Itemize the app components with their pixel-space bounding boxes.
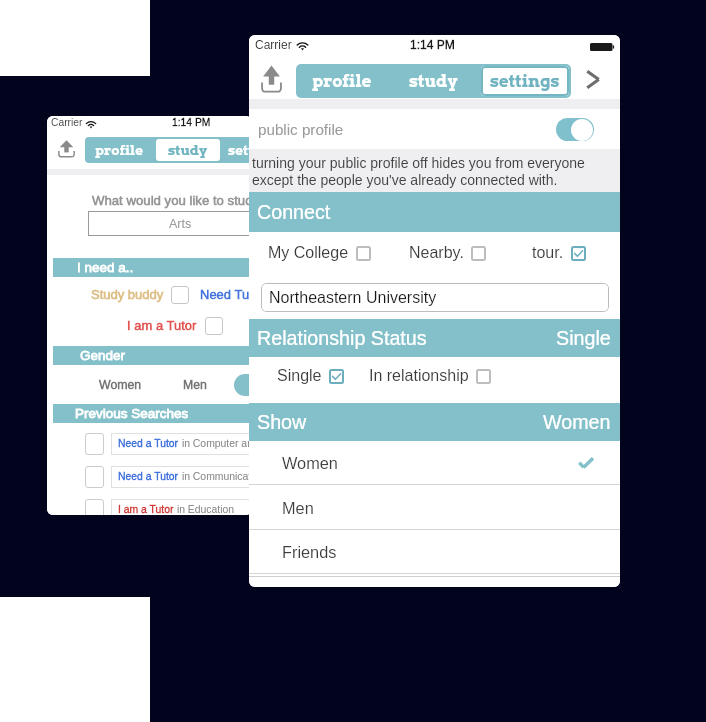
button[interactable]: tour. (532, 241, 586, 265)
button[interactable]: profile (298, 66, 385, 96)
staticText: Carrier (51, 117, 83, 129)
staticText: Study buddy (91, 287, 164, 302)
button[interactable]: My College (268, 241, 371, 265)
button[interactable]: public profile (249, 109, 620, 149)
button[interactable] (234, 374, 252, 396)
staticText: study (409, 71, 458, 91)
button[interactable]: Northeastern University (261, 283, 609, 312)
staticText: What would you like to study? (92, 193, 252, 208)
staticText: Men (183, 378, 207, 392)
button[interactable]: In relationship (369, 364, 491, 388)
staticText: 1:14 PM (410, 38, 455, 51)
staticText: In relationship (369, 367, 469, 385)
staticText: settings (490, 71, 560, 91)
button[interactable]: study (389, 66, 477, 96)
staticText: public profile (258, 121, 344, 138)
staticText: Women (543, 411, 611, 433)
button[interactable] (85, 499, 104, 515)
staticText: 1:14 PM (172, 117, 211, 129)
staticText: turning your public profile off hides yo… (252, 155, 612, 188)
button[interactable] (85, 466, 104, 488)
staticText: I need a.. (77, 260, 134, 275)
staticText: Single (556, 327, 611, 349)
button[interactable] (171, 286, 189, 304)
staticText: Previous Searches (75, 406, 189, 421)
staticText: Women (282, 454, 338, 472)
staticText: profile (312, 71, 372, 91)
button[interactable]: Need a Tutor (111, 466, 252, 488)
staticText: Arts (169, 217, 192, 231)
staticText: I am a Tutor (127, 318, 197, 333)
staticText: Northeastern University (269, 289, 437, 307)
staticText: Nearby. (409, 244, 464, 262)
staticText: Show (257, 411, 307, 433)
staticText: Connect (257, 201, 331, 223)
staticText: Need a Tutor (118, 438, 179, 450)
button[interactable]: Men (249, 485, 620, 530)
button[interactable]: settings (224, 139, 252, 161)
staticText: in Communication (179, 471, 252, 483)
staticText: Friends (282, 543, 337, 561)
button[interactable]: profile (87, 139, 152, 161)
staticText: Women (99, 378, 142, 392)
staticText: in Computer and... (179, 438, 252, 450)
staticText: Men (282, 499, 314, 517)
staticText: Need a Tutor (118, 471, 179, 483)
button[interactable]: Friends (249, 530, 620, 574)
staticText: tour. (532, 244, 564, 262)
button[interactable]: Nearby. (409, 241, 486, 265)
button[interactable]: Need a Tutor (111, 433, 252, 455)
button[interactable]: Upload (261, 65, 282, 92)
button[interactable] (205, 317, 223, 335)
button[interactable]: Upload (58, 140, 75, 157)
button[interactable]: Women (249, 441, 620, 485)
button[interactable]: study (156, 139, 220, 161)
staticText: I am a Tutor (118, 504, 174, 515)
staticText: profile (95, 142, 144, 158)
button[interactable]: settings (481, 66, 569, 96)
staticText: study (168, 142, 208, 158)
staticText: in Education (174, 504, 235, 515)
button[interactable] (85, 433, 104, 455)
button[interactable]: Next (584, 70, 602, 89)
button[interactable]: I am a Tutor (111, 499, 252, 515)
staticText: My College (268, 244, 349, 262)
staticText: Single (277, 367, 322, 385)
button[interactable]: Arts (88, 211, 252, 236)
staticText: Relationship Status (257, 327, 427, 349)
staticText: Gender (80, 348, 126, 363)
staticText: Carrier (255, 38, 292, 51)
staticText: settings (228, 142, 252, 158)
button[interactable]: Single (277, 364, 344, 388)
staticText: Need Tutor (200, 287, 252, 302)
